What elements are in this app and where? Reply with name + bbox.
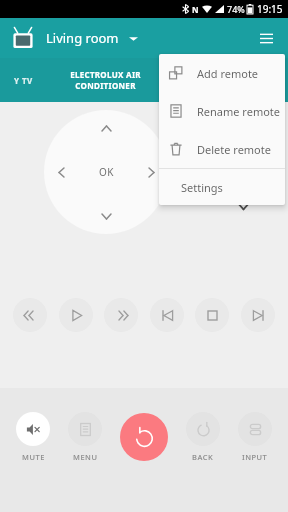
- staticText: INPUT: [242, 452, 268, 462]
- staticText: Rename remote: [197, 104, 281, 119]
- button[interactable]: Device: [10, 25, 36, 51]
- button[interactable]: Delete remote: [159, 130, 285, 168]
- button[interactable]: [68, 412, 102, 446]
- staticText: 74%: [227, 3, 245, 15]
- staticText: Delete remote: [197, 142, 271, 157]
- button[interactable]: ELECTROLUX AIR CONDITIONER: [46, 58, 164, 102]
- button[interactable]: Next: [241, 298, 275, 332]
- button[interactable]: More options: [250, 22, 282, 54]
- button[interactable]: Volume down: [227, 190, 259, 222]
- button[interactable]: Power: [120, 413, 168, 461]
- button[interactable]: Settings: [159, 169, 285, 205]
- button[interactable]: Down: [86, 198, 126, 234]
- button[interactable]: Play: [59, 298, 93, 332]
- button[interactable]: Add remote: [159, 54, 285, 92]
- staticText: BACK: [192, 452, 214, 462]
- staticText: Add remote: [197, 66, 259, 81]
- button[interactable]: Rewind: [13, 298, 47, 332]
- button[interactable]: OK: [83, 149, 129, 195]
- staticText: OK: [99, 165, 114, 179]
- button[interactable]: [16, 412, 50, 446]
- staticText: MENU: [73, 452, 98, 462]
- button[interactable]: Fast forward: [104, 298, 138, 332]
- button[interactable]: Rename remote: [159, 92, 285, 130]
- staticText: Settings: [181, 180, 223, 195]
- button[interactable]: Living room: [46, 29, 138, 47]
- staticText: Living room: [46, 29, 119, 47]
- button[interactable]: Right: [134, 152, 168, 192]
- button[interactable]: Up: [86, 110, 126, 146]
- staticText: 19:15: [257, 2, 283, 16]
- staticText: N: [192, 4, 199, 15]
- staticText: Y TV: [14, 75, 33, 86]
- button[interactable]: [186, 412, 220, 446]
- button[interactable]: Y TV: [0, 58, 46, 102]
- button[interactable]: Previous: [150, 298, 184, 332]
- button[interactable]: Left: [44, 152, 78, 192]
- button[interactable]: [238, 412, 272, 446]
- staticText: MUTE: [22, 452, 45, 462]
- staticText: ELECTROLUX AIR CONDITIONER: [70, 69, 141, 91]
- button[interactable]: Stop: [195, 298, 229, 332]
